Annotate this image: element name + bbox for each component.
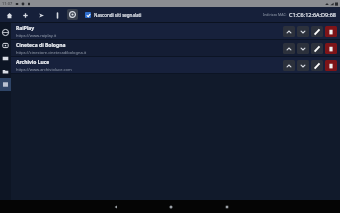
button[interactable]: Sposta su bbox=[283, 26, 295, 37]
button[interactable]: Allega bbox=[52, 10, 62, 20]
button[interactable]: Recenti bbox=[221, 201, 232, 212]
button[interactable]: Modifica bbox=[311, 26, 323, 37]
button[interactable]: Elimina bbox=[325, 60, 337, 71]
staticText: Archivio Luce bbox=[16, 59, 50, 66]
button[interactable]: Sposta giù bbox=[297, 26, 309, 37]
button[interactable]: Archivio Luce bbox=[11, 57, 340, 73]
button[interactable]: Sposta giù bbox=[297, 60, 309, 71]
button[interactable]: Globo bbox=[0, 26, 11, 39]
button[interactable]: Cineteca di Bologna bbox=[11, 40, 340, 56]
button[interactable]: Aggiungi bbox=[20, 10, 30, 20]
button[interactable]: Finestra bbox=[0, 52, 11, 65]
staticText: https://www.archivioluce.com bbox=[16, 67, 72, 72]
button[interactable]: Modifica bbox=[311, 60, 323, 71]
staticText: C1:C6:12:6A:D9:68 bbox=[289, 11, 337, 18]
button[interactable]: Elimina bbox=[325, 26, 337, 37]
button[interactable]: Sposta su bbox=[283, 60, 295, 71]
button[interactable]: RaiPlay bbox=[11, 23, 340, 39]
button[interactable]: Sposta giù bbox=[297, 43, 309, 54]
staticText: RaiPlay bbox=[16, 25, 35, 32]
button[interactable]: Cartella bbox=[0, 65, 11, 78]
button[interactable]: Nascondi siti segnalati bbox=[84, 11, 143, 19]
button[interactable]: Impostazioni bbox=[67, 9, 78, 20]
button[interactable]: Indietro bbox=[110, 201, 121, 212]
button[interactable]: Home bbox=[165, 201, 176, 212]
staticText: https://www.raiplay.it bbox=[16, 33, 57, 38]
staticText: Indirizzo MAC: bbox=[263, 12, 287, 17]
button[interactable]: Elimina bbox=[325, 43, 337, 54]
staticText: https://cinestore.cinetecadibologna.it bbox=[16, 50, 87, 55]
button[interactable]: Invia bbox=[36, 10, 46, 20]
button[interactable]: Modifica bbox=[311, 43, 323, 54]
staticText: Nascondi siti segnalati bbox=[94, 12, 142, 18]
button[interactable]: Sposta su bbox=[283, 43, 295, 54]
staticText: 11:07 bbox=[2, 1, 13, 6]
button[interactable]: Schermo bbox=[0, 39, 11, 52]
staticText: Cineteca di Bologna bbox=[16, 42, 66, 49]
button[interactable]: Home bbox=[4, 10, 14, 20]
button[interactable]: Siti bbox=[0, 78, 11, 91]
